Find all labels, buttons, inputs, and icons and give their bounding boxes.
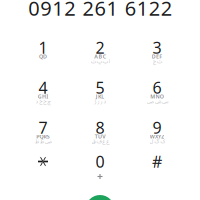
button[interactable]: Star bbox=[14, 155, 71, 195]
staticText: ع غ ف ق bbox=[91, 136, 109, 147]
button[interactable]: 6 bbox=[128, 79, 185, 119]
staticText: 0 bbox=[95, 151, 104, 172]
button[interactable]: 1 bbox=[14, 39, 71, 79]
staticText: ABC bbox=[94, 53, 106, 60]
staticText: ا ب پ ت bbox=[90, 56, 109, 67]
staticText: MNO bbox=[150, 93, 164, 100]
staticText: QD bbox=[39, 53, 47, 60]
staticText: WXYZ bbox=[150, 133, 164, 140]
button[interactable]: Zero, plus bbox=[71, 155, 128, 195]
staticText: 6 bbox=[152, 77, 161, 98]
staticText: ث ج bbox=[152, 56, 161, 67]
staticText: 9 bbox=[152, 117, 161, 138]
button[interactable]: # bbox=[128, 155, 185, 195]
staticText: 5 bbox=[95, 77, 104, 98]
staticText: چ ح خ د bbox=[35, 96, 51, 107]
staticText: 8 bbox=[95, 117, 104, 138]
staticText: ک گ ل bbox=[149, 136, 165, 147]
staticText: 2 bbox=[95, 37, 104, 58]
button[interactable]: 9 bbox=[128, 119, 185, 159]
button[interactable]: 8 bbox=[71, 119, 128, 159]
staticText: PQRS bbox=[36, 133, 50, 140]
button[interactable]: 4 bbox=[14, 79, 71, 119]
staticText: GHI bbox=[38, 93, 48, 100]
staticText: ذ ر ز ژ bbox=[94, 96, 106, 107]
button[interactable]: 5 bbox=[71, 79, 128, 119]
button[interactable]: 3 bbox=[128, 39, 185, 79]
staticText: DEF bbox=[152, 53, 162, 60]
staticText: 4 bbox=[38, 77, 47, 98]
button[interactable]: 2 bbox=[71, 39, 128, 79]
staticText: TUV bbox=[95, 133, 105, 140]
staticText: # bbox=[152, 151, 162, 172]
staticText: ض ط ظ bbox=[34, 136, 51, 147]
button[interactable]: 7 bbox=[14, 119, 71, 159]
button[interactable]: Call bbox=[85, 195, 114, 200]
staticText: س ش ص bbox=[146, 96, 167, 107]
staticText: 7 bbox=[38, 117, 47, 138]
staticText: 3 bbox=[152, 37, 161, 58]
staticText: 1 bbox=[38, 37, 47, 58]
staticText: JKL bbox=[96, 93, 104, 100]
staticText: 0912 261 6122 bbox=[28, 0, 172, 21]
